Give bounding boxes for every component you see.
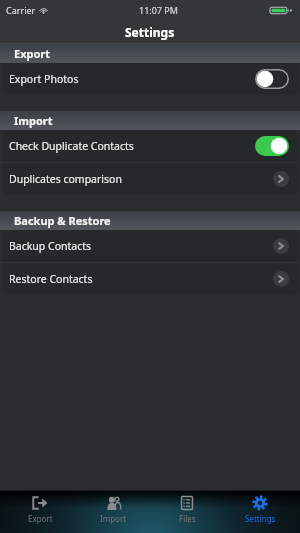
staticText: Settings — [125, 24, 175, 40]
button[interactable]: Files — [154, 495, 220, 524]
button[interactable]: Switch on — [255, 136, 289, 156]
button[interactable]: Duplicates comparison — [2, 163, 298, 195]
button[interactable]: Export Photos — [2, 63, 298, 95]
button[interactable]: Restore Contacts — [2, 263, 298, 295]
staticText: Backup & Restore — [14, 213, 111, 228]
staticText: Check Duplicate Contacts — [9, 139, 134, 153]
button[interactable]: Backup Contacts — [2, 230, 298, 262]
staticText: Backup Contacts — [9, 239, 92, 253]
staticText: Restore Contacts — [9, 272, 93, 286]
button[interactable]: Settings — [227, 495, 293, 524]
button[interactable]: Check Duplicate Contacts — [2, 130, 298, 162]
staticText: Duplicates comparison — [9, 172, 122, 186]
staticText: Settings — [245, 513, 276, 524]
button[interactable]: Open — [273, 271, 289, 287]
button[interactable]: Open — [273, 238, 289, 254]
staticText: Export — [28, 513, 53, 524]
staticText: Files — [179, 513, 196, 524]
staticText: Import — [100, 513, 127, 524]
staticText: Export — [14, 46, 51, 61]
button[interactable]: Open — [273, 171, 289, 187]
button[interactable]: Switch off — [255, 69, 289, 89]
button[interactable]: Export — [7, 495, 73, 524]
staticText: Export Photos — [9, 72, 79, 86]
staticText: 11:07 PM — [139, 4, 178, 16]
staticText: Carrier — [6, 4, 36, 16]
staticText: Import — [14, 113, 53, 128]
button[interactable]: Import — [80, 495, 146, 524]
